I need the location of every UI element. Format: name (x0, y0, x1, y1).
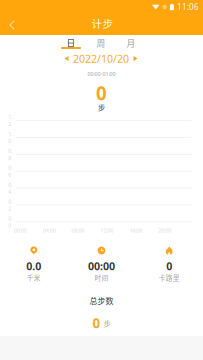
staticText: 0 (166, 259, 172, 273)
staticText: 0.8 (8, 147, 12, 161)
staticText: 周 (96, 37, 105, 49)
button[interactable]: 日 (56, 36, 86, 50)
button[interactable]: 月 (116, 36, 146, 50)
button[interactable]: Back (0, 14, 24, 36)
staticText: 00:00 (88, 259, 115, 273)
staticText: 04:00 (43, 227, 56, 234)
button[interactable]: Previous day (60, 53, 73, 64)
staticText: 16:00 (129, 227, 142, 234)
staticText: 千米 (27, 273, 41, 282)
staticText: 12:00 (100, 227, 113, 234)
staticText: 08:00 (72, 227, 85, 234)
staticText: 0.0 (26, 259, 41, 273)
staticText: 计步 (91, 15, 113, 31)
button[interactable]: 00:00 (68, 245, 135, 285)
staticText: 日 (66, 37, 75, 49)
staticText: 0 (92, 314, 100, 332)
staticText: 1.2 (8, 113, 12, 128)
staticText: 00:00-01:00 (87, 70, 115, 78)
staticText: 20:00 (158, 227, 171, 234)
button[interactable]: 0.0 (0, 245, 68, 285)
button[interactable]: 周 (86, 36, 116, 50)
staticText: 0.4 (8, 181, 12, 195)
staticText: 总步数 (89, 295, 113, 306)
staticText: 1.0 (8, 130, 12, 144)
staticText: 0.6 (8, 164, 12, 178)
staticText: 0 (96, 81, 107, 105)
staticText: 11:06 (177, 2, 199, 12)
staticText: 2022/10/20 (73, 51, 129, 66)
staticText: 月 (126, 37, 135, 49)
staticText: 0.2 (8, 198, 12, 212)
staticText: 步 (103, 318, 110, 328)
staticText: 00:00 (14, 227, 27, 234)
staticText: 时间 (94, 273, 108, 282)
staticText: 0.0 (8, 215, 12, 229)
button[interactable]: Next day (129, 53, 142, 64)
button[interactable]: 0 (135, 245, 203, 285)
staticText: 步 (98, 102, 105, 112)
staticText: 卡路里 (159, 273, 180, 282)
